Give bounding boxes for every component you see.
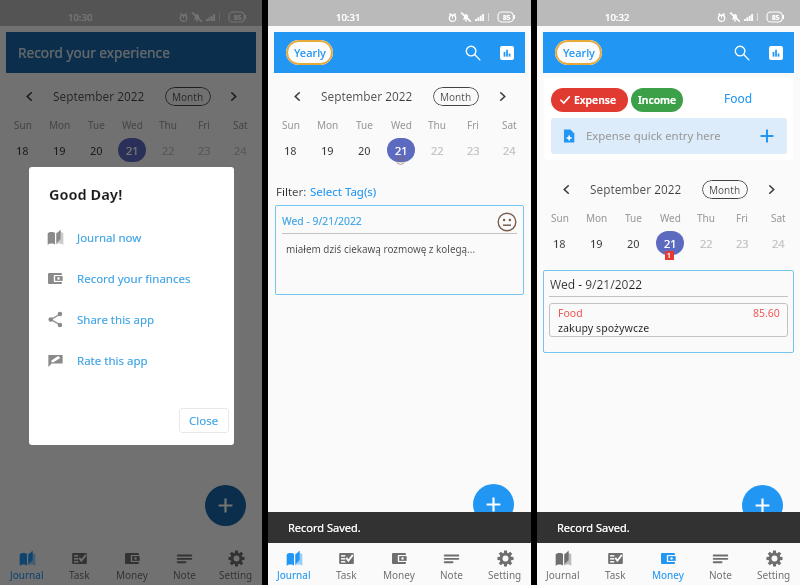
- button[interactable]: 24: [491, 138, 527, 162]
- button[interactable]: Task: [589, 543, 641, 585]
- button[interactable]: Wed - 9/21/2022: [543, 270, 794, 353]
- button[interactable]: Note: [158, 543, 210, 585]
- button[interactable]: Month: [165, 87, 211, 106]
- button[interactable]: 23: [455, 138, 491, 162]
- button[interactable]: Next month: [492, 86, 512, 106]
- button[interactable]: Note: [694, 543, 747, 585]
- staticText: Fri: [467, 118, 479, 132]
- button[interactable]: Search: [462, 42, 484, 64]
- button[interactable]: Setting: [478, 543, 531, 585]
- staticText: 20: [627, 236, 640, 251]
- button[interactable]: Month: [433, 87, 479, 106]
- button[interactable]: Close: [179, 408, 229, 433]
- staticText: Food: [558, 306, 583, 320]
- button[interactable]: Rate this app: [29, 340, 234, 381]
- button[interactable]: Task: [320, 543, 372, 585]
- staticText: Note: [173, 568, 196, 582]
- button[interactable]: 19: [578, 231, 615, 255]
- button[interactable]: Setting: [210, 543, 262, 585]
- button[interactable]: 21: [652, 231, 688, 255]
- button[interactable]: Select Tag(s): [310, 184, 377, 200]
- button[interactable]: Money: [372, 543, 425, 585]
- staticText: Rate this app: [77, 353, 148, 369]
- staticText: 85: [772, 13, 780, 22]
- staticText: 24: [503, 143, 516, 158]
- button[interactable]: Food: [724, 90, 753, 106]
- button[interactable]: Search: [731, 42, 753, 64]
- staticText: 18: [553, 236, 566, 251]
- button[interactable]: Previous month: [287, 86, 307, 106]
- button[interactable]: Food: [549, 303, 788, 337]
- button[interactable]: Yearly: [286, 40, 333, 65]
- button[interactable]: Next month: [223, 86, 243, 106]
- button[interactable]: Next month: [761, 179, 781, 199]
- button[interactable]: 21: [114, 138, 150, 162]
- staticText: Thu: [428, 118, 446, 132]
- staticText: Sun: [551, 211, 569, 225]
- button[interactable]: Month: [702, 180, 748, 199]
- button[interactable]: 18: [4, 138, 41, 162]
- button[interactable]: Yearly: [555, 40, 602, 65]
- staticText: Wed: [660, 211, 681, 225]
- button[interactable]: 20: [78, 138, 114, 162]
- staticText: 21: [664, 236, 677, 251]
- button[interactable]: 19: [41, 138, 78, 162]
- button[interactable]: Expense quick entry here: [551, 118, 787, 154]
- button[interactable]: Money: [641, 543, 694, 585]
- staticText: 85.60: [753, 306, 780, 320]
- button[interactable]: Wed - 9/21/2022: [275, 205, 524, 295]
- staticText: Fri: [736, 211, 748, 225]
- button[interactable]: 23: [724, 231, 760, 255]
- button[interactable]: Setting: [747, 543, 800, 585]
- staticText: 85: [503, 13, 511, 22]
- staticText: Mon: [49, 118, 71, 132]
- staticText: Sat: [233, 118, 248, 132]
- button[interactable]: 23: [186, 138, 222, 162]
- button[interactable]: Journal: [268, 543, 320, 585]
- button[interactable]: 20: [615, 231, 652, 255]
- staticText: Filter:: [276, 184, 310, 200]
- button[interactable]: 24: [222, 138, 258, 162]
- staticText: 10:31: [336, 11, 361, 24]
- button[interactable]: 22: [419, 138, 455, 162]
- staticText: 22: [700, 236, 713, 251]
- staticText: 19: [321, 143, 334, 158]
- staticText: Select Tag(s): [310, 184, 377, 200]
- staticText: 23: [198, 143, 211, 158]
- button[interactable]: 22: [688, 231, 724, 255]
- staticText: Wed: [391, 118, 412, 132]
- button[interactable]: Record your finances: [29, 258, 234, 299]
- button[interactable]: Statistics: [765, 42, 787, 64]
- button[interactable]: Add: [473, 484, 514, 525]
- staticText: 21: [126, 143, 139, 158]
- button[interactable]: Task: [53, 543, 106, 585]
- button[interactable]: Journal now: [29, 217, 234, 258]
- button[interactable]: 22: [150, 138, 186, 162]
- button[interactable]: Previous month: [19, 86, 39, 106]
- staticText: Journal: [546, 568, 580, 582]
- staticText: Setting: [219, 568, 253, 582]
- button[interactable]: Note: [425, 543, 478, 585]
- button[interactable]: 19: [309, 138, 346, 162]
- button[interactable]: 18: [541, 231, 578, 255]
- staticText: 19: [590, 236, 603, 251]
- button[interactable]: Add: [205, 485, 246, 526]
- button[interactable]: Money: [106, 543, 158, 585]
- button[interactable]: Previous month: [556, 179, 576, 199]
- staticText: Yearly: [294, 45, 326, 60]
- button[interactable]: 24: [760, 231, 796, 255]
- button[interactable]: Expense: [551, 88, 628, 112]
- button[interactable]: Income: [631, 88, 683, 112]
- button[interactable]: 18: [272, 138, 309, 162]
- button[interactable]: Journal: [537, 543, 589, 585]
- button[interactable]: 20: [346, 138, 383, 162]
- staticText: Wed - 9/21/2022: [550, 276, 643, 292]
- button[interactable]: Journal: [0, 543, 53, 585]
- button[interactable]: 21: [383, 138, 419, 162]
- button[interactable]: Share this app: [29, 299, 234, 340]
- button[interactable]: Add: [742, 485, 783, 526]
- staticText: 22: [431, 143, 444, 158]
- button[interactable]: Statistics: [496, 42, 518, 64]
- staticText: 22: [162, 143, 175, 158]
- staticText: 20: [90, 143, 103, 158]
